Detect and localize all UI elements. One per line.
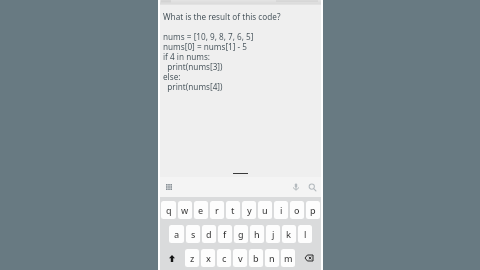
staticText: z — [190, 252, 195, 264]
staticText: a — [174, 228, 180, 240]
staticText: u — [262, 204, 268, 216]
staticText: j — [272, 228, 275, 240]
button[interactable]: u — [258, 201, 272, 219]
button[interactable]: k — [282, 225, 296, 243]
staticText: l — [304, 228, 307, 240]
button[interactable]: t — [226, 201, 240, 219]
button[interactable]: f — [218, 225, 232, 243]
staticText: y — [247, 204, 252, 216]
button[interactable]: y — [242, 201, 256, 219]
button[interactable]: e — [194, 201, 208, 219]
staticText: s — [191, 228, 196, 240]
staticText: w — [181, 204, 189, 216]
button[interactable]: g — [234, 225, 248, 243]
staticText: o — [294, 204, 300, 216]
button[interactable]: p — [306, 201, 320, 219]
staticText: i — [280, 204, 283, 216]
button[interactable]: r — [210, 201, 224, 219]
staticText: nums = [10, 9, 8, 7, 6, 5] nums[0] = num… — [163, 31, 254, 92]
button[interactable]: l — [298, 225, 312, 243]
staticText: d — [206, 228, 212, 240]
staticText: c — [222, 252, 227, 264]
button[interactable]: z — [185, 249, 199, 267]
staticText: n — [269, 252, 275, 264]
button[interactable]: a — [169, 225, 184, 243]
button[interactable]: h — [250, 225, 264, 243]
staticText: What is the result of this code? — [163, 11, 281, 22]
button[interactable]: j — [266, 225, 280, 243]
button[interactable]: n — [265, 249, 279, 267]
staticText: h — [254, 228, 260, 240]
staticText: r — [215, 204, 219, 216]
button[interactable]: x — [201, 249, 215, 267]
staticText: m — [284, 252, 293, 264]
staticText: k — [286, 228, 292, 240]
button[interactable]: s — [186, 225, 200, 243]
staticText: f — [223, 228, 227, 240]
staticText: v — [238, 252, 243, 264]
button[interactable]: c — [217, 249, 231, 267]
button[interactable]: o — [290, 201, 304, 219]
button[interactable]: q — [161, 201, 176, 219]
button[interactable]: w — [178, 201, 192, 219]
button[interactable]: b — [249, 249, 263, 267]
button[interactable]: m — [281, 249, 295, 267]
button[interactable]: Voice input — [289, 180, 303, 194]
button[interactable]: i — [274, 201, 288, 219]
button[interactable]: v — [233, 249, 247, 267]
button[interactable]: Switch keyboard — [162, 180, 176, 194]
button[interactable]: Shift — [161, 249, 183, 267]
staticText: t — [231, 204, 235, 216]
button[interactable]: d — [202, 225, 216, 243]
staticText: e — [198, 204, 204, 216]
staticText: x — [206, 252, 211, 264]
staticText: g — [238, 228, 244, 240]
button[interactable]: Backspace — [297, 249, 320, 267]
staticText: p — [310, 204, 316, 216]
staticText: b — [253, 252, 259, 264]
staticText: q — [166, 204, 172, 216]
button[interactable]: Search — [305, 180, 319, 194]
